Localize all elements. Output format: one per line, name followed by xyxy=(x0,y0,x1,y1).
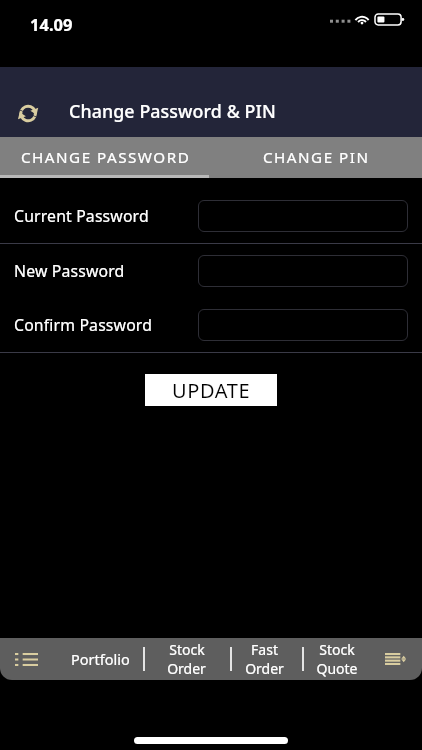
button[interactable]: Portfolio xyxy=(58,638,143,680)
staticText: Order xyxy=(167,659,206,678)
staticText: Stock xyxy=(319,640,355,659)
button[interactable]: Menu xyxy=(9,642,43,676)
staticText: Confirm Password xyxy=(14,314,198,336)
button[interactable]: Refresh xyxy=(9,93,49,133)
button[interactable]: Stock xyxy=(153,638,219,680)
staticText: Quote xyxy=(316,659,358,678)
staticText: Stock xyxy=(169,640,205,659)
staticText: New Password xyxy=(14,260,198,282)
button[interactable] xyxy=(198,200,408,232)
button[interactable]: CHANGE PIN xyxy=(211,137,422,178)
staticText: CHANGE PIN xyxy=(263,147,370,168)
button[interactable]: More options xyxy=(378,642,412,676)
staticText: UPDATE xyxy=(172,377,251,404)
button[interactable]: Fast xyxy=(231,638,297,680)
button[interactable] xyxy=(198,309,408,341)
staticText: CHANGE PASSWORD xyxy=(21,147,191,168)
staticText: Portfolio xyxy=(71,649,130,669)
button[interactable]: Stock xyxy=(304,638,370,680)
staticText: Order xyxy=(245,659,284,678)
staticText: 14.09 xyxy=(30,13,73,35)
staticText: Fast xyxy=(251,640,278,659)
button[interactable]: UPDATE xyxy=(145,374,277,406)
button[interactable] xyxy=(198,255,408,287)
button[interactable]: CHANGE PASSWORD xyxy=(0,137,211,178)
staticText: Change Password & PIN xyxy=(69,99,276,123)
staticText: Current Password xyxy=(14,205,198,227)
